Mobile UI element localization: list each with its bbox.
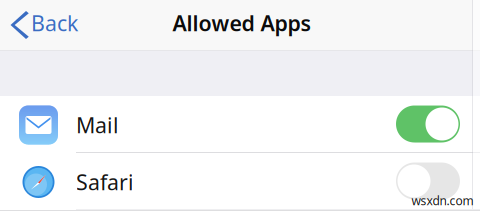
staticText: Safari [76, 168, 134, 196]
staticText: Allowed Apps [172, 9, 311, 37]
button[interactable]: Safari [0, 153, 480, 209]
button[interactable]: Mail [0, 96, 480, 152]
staticText: Back [31, 9, 78, 37]
button[interactable]: Back [0, 0, 88, 50]
staticText: wsxdn.com [411, 192, 473, 208]
staticText: Mail [76, 111, 119, 139]
